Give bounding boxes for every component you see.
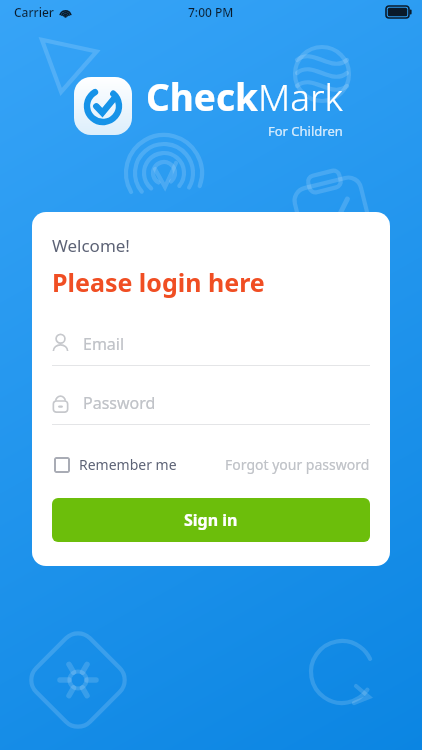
- staticText: CheckMark: [146, 71, 343, 121]
- button[interactable]: Forgot your password: [225, 449, 370, 480]
- other: Email: [52, 334, 69, 354]
- staticText: 7:00 PM: [188, 4, 234, 20]
- button[interactable]: Password: [52, 390, 370, 425]
- staticText: Password: [83, 392, 156, 414]
- staticText: Welcome!: [52, 234, 130, 257]
- other: Password: [52, 393, 69, 413]
- staticText: Forgot your password: [225, 455, 370, 474]
- staticText: Please login here: [52, 265, 265, 299]
- staticText: For Children: [268, 122, 343, 140]
- button[interactable]: Email: [52, 331, 370, 366]
- staticText: Carrier: [14, 4, 54, 20]
- staticText: Remember me: [79, 455, 177, 474]
- staticText: Email: [83, 333, 125, 355]
- button[interactable]: Remember me: [52, 449, 179, 480]
- button[interactable]: Sign in: [52, 498, 370, 542]
- staticText: Sign in: [184, 509, 238, 531]
